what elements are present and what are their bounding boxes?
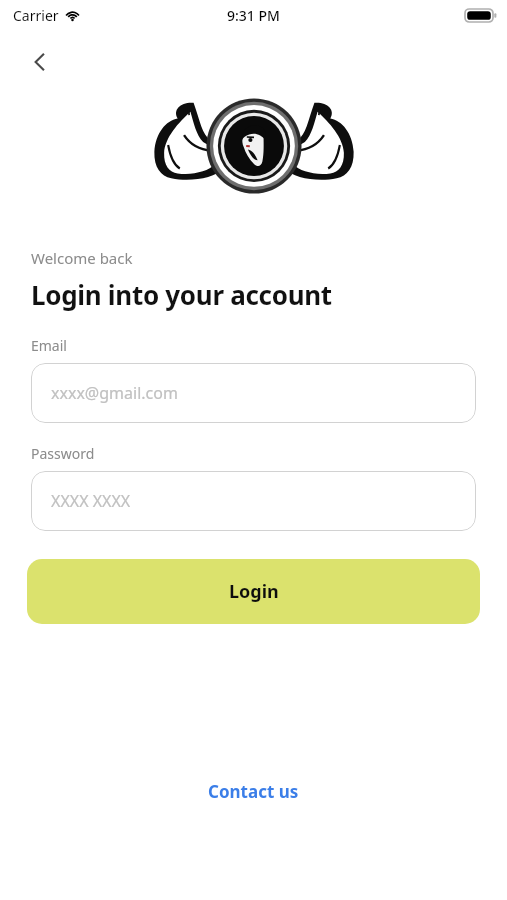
staticText: Login into your account	[31, 277, 332, 312]
button[interactable]: Login	[27, 559, 480, 624]
staticText: 9:31 PM	[227, 6, 280, 25]
staticText: xxxx@gmail.com	[51, 382, 178, 404]
button[interactable]: Contact us	[198, 774, 309, 809]
staticText: Contact us	[208, 780, 299, 803]
button[interactable]: XXXX XXXX	[31, 471, 476, 531]
staticText: Password	[31, 444, 95, 463]
staticText: Login	[229, 579, 279, 604]
staticText: Welcome back	[31, 248, 133, 268]
staticText: Carrier	[13, 6, 59, 25]
button[interactable]: Back	[18, 40, 62, 84]
staticText: Email	[31, 336, 67, 355]
staticText: XXXX XXXX	[51, 490, 131, 512]
button[interactable]: xxxx@gmail.com	[31, 363, 476, 423]
